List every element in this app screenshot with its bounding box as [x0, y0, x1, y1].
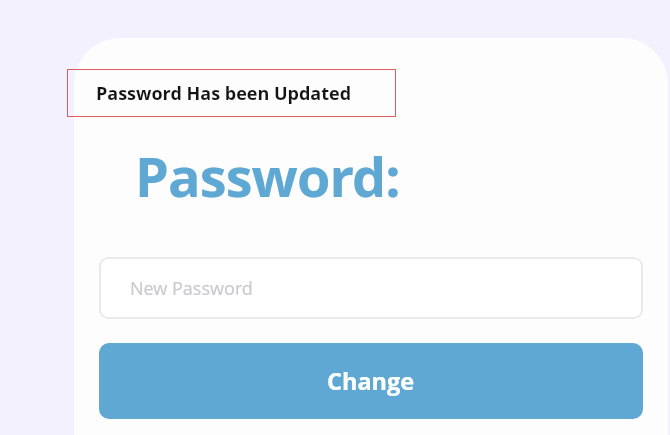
staticText: Password Has been Updated: [96, 81, 352, 106]
staticText: New Password: [130, 276, 253, 301]
staticText: Password:: [135, 139, 400, 213]
button[interactable]: Password Has been Updated: [67, 69, 396, 117]
button[interactable]: Change: [99, 343, 643, 419]
staticText: Change: [327, 365, 415, 397]
button[interactable]: New Password field: [99, 257, 643, 319]
